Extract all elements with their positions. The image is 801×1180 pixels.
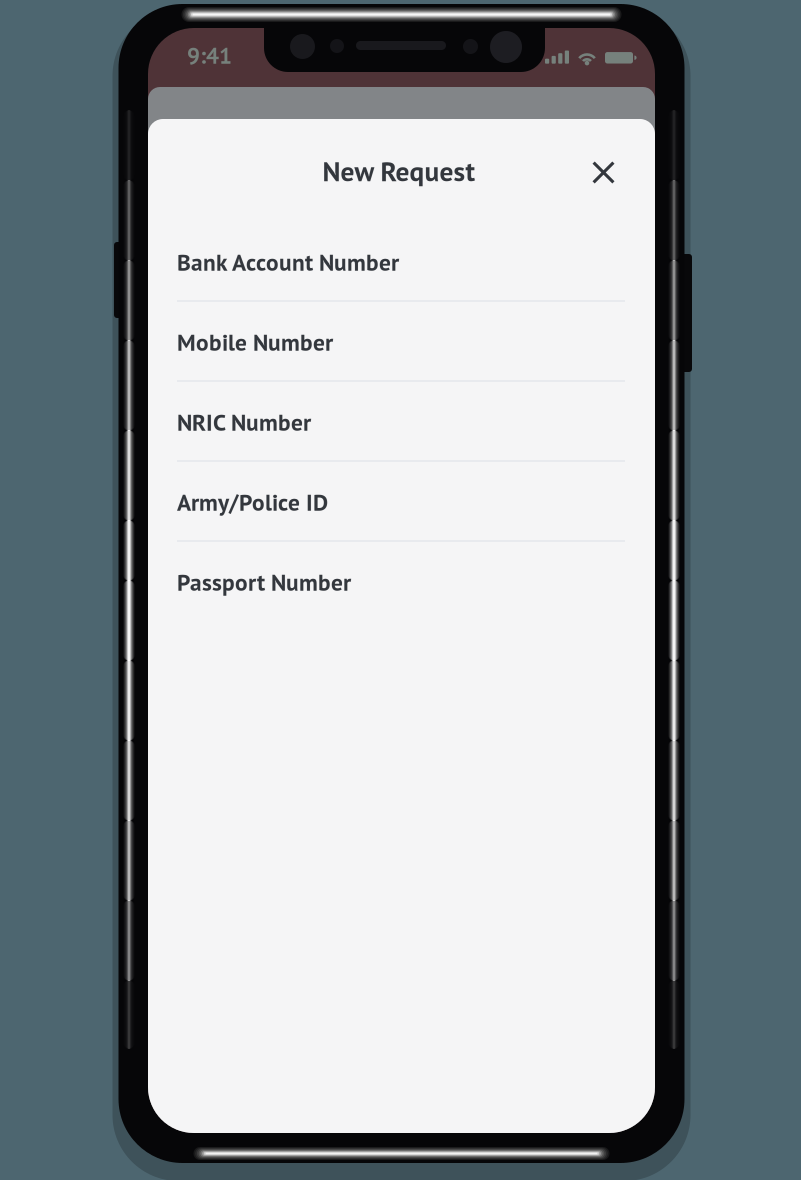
staticText: NRIC Number (177, 407, 311, 437)
staticText: Army/Police ID (177, 487, 328, 517)
button[interactable]: Bank Account Number (177, 222, 625, 302)
button[interactable]: Mobile Number (177, 302, 625, 382)
button[interactable]: Passport Number (177, 542, 625, 622)
button[interactable]: Army/Police ID (177, 462, 625, 542)
staticText: Passport Number (177, 567, 351, 597)
button[interactable]: Close (580, 149, 626, 195)
staticText: Mobile Number (177, 327, 333, 357)
staticText: Bank Account Number (177, 247, 399, 277)
button[interactable]: NRIC Number (177, 382, 625, 462)
staticText: New Request (322, 153, 475, 189)
staticText: 9:41 (187, 40, 232, 70)
